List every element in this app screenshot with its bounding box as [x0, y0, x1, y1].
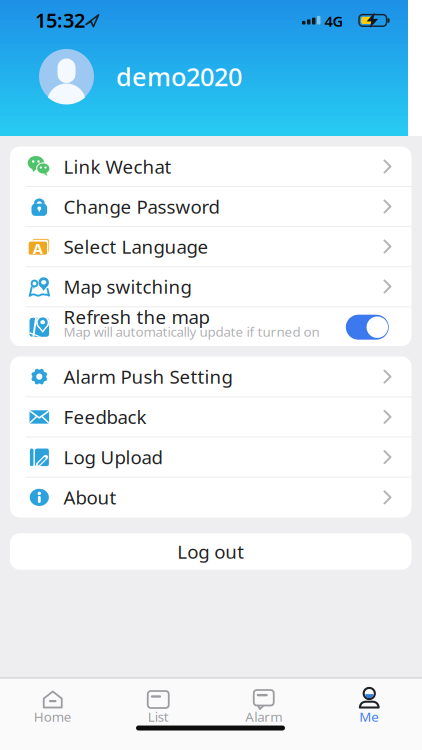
staticText: Home — [34, 708, 72, 725]
staticText: About — [63, 485, 116, 510]
staticText: Map will automatically update if turned … — [63, 323, 319, 340]
staticText: Alarm — [245, 708, 282, 725]
button[interactable]: Map switching — [10, 266, 411, 306]
button[interactable]: Log out — [10, 533, 411, 570]
button[interactable]: Alarm — [211, 678, 316, 728]
staticText: Alarm Push Setting — [63, 364, 232, 389]
staticText: demo2020 — [116, 60, 242, 93]
staticText: Change Password — [63, 194, 219, 219]
staticText: Refresh the map — [63, 304, 209, 329]
button[interactable]: About — [10, 477, 411, 517]
staticText: 4G — [324, 11, 343, 31]
staticText: List — [148, 708, 169, 725]
button[interactable]: List — [105, 678, 211, 728]
button[interactable]: Home — [0, 678, 105, 728]
button[interactable]: Me — [316, 678, 422, 728]
staticText: Log out — [177, 539, 244, 564]
staticText: A — [33, 239, 43, 258]
button[interactable]: Link Wechat — [10, 146, 411, 186]
staticText: Log Upload — [63, 445, 162, 469]
button[interactable]: Change Password — [10, 186, 411, 226]
button[interactable]: Log Upload — [10, 437, 411, 477]
staticText: Map switching — [63, 274, 191, 299]
staticText: 15:32 — [35, 7, 85, 33]
button[interactable]: Refresh the map — [346, 315, 389, 340]
staticText: Me — [359, 708, 379, 725]
button[interactable]: Feedback — [10, 397, 411, 437]
button[interactable]: A — [10, 226, 411, 266]
staticText: Link Wechat — [63, 154, 171, 179]
staticText: Feedback — [63, 404, 146, 429]
staticText: Select Language — [63, 234, 208, 259]
button[interactable]: Alarm Push Setting — [10, 356, 411, 397]
button[interactable]: Profile demo2020 — [35, 47, 275, 105]
